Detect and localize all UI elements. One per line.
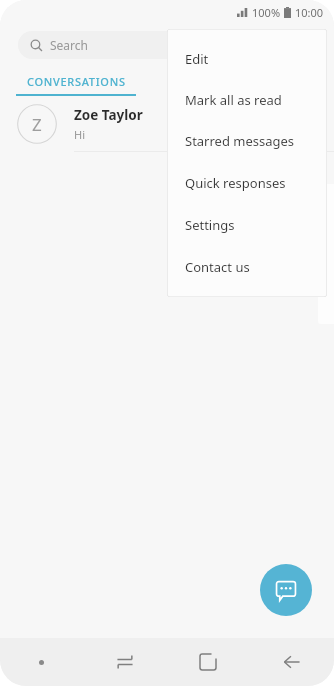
staticText: Contact us xyxy=(185,258,250,276)
button[interactable]: Edit xyxy=(167,38,327,79)
staticText: 100% xyxy=(252,5,281,20)
button[interactable]: Menu indicator xyxy=(0,638,83,686)
button[interactable]: Back xyxy=(250,638,334,686)
button[interactable]: Z xyxy=(0,96,334,151)
button[interactable]: Settings xyxy=(167,204,327,246)
staticText: Settings xyxy=(185,216,235,234)
button[interactable]: Recents xyxy=(83,638,166,686)
button[interactable]: Starred messages xyxy=(167,120,327,162)
button[interactable]: Home xyxy=(166,638,250,686)
button[interactable]: New conversation xyxy=(260,564,312,616)
staticText: Starred messages xyxy=(185,132,295,150)
button[interactable]: Quick responses xyxy=(167,162,327,204)
staticText: Mark all as read xyxy=(185,91,282,109)
staticText: Quick responses xyxy=(185,174,286,192)
staticText: Hi xyxy=(74,127,85,142)
staticText: CONVERSATIONS xyxy=(27,74,126,89)
button[interactable]: Search xyxy=(18,31,316,59)
staticText: 10:00 xyxy=(295,5,324,20)
staticText: Z xyxy=(32,113,42,136)
staticText: Search xyxy=(50,37,88,53)
button[interactable]: Mark all as read xyxy=(167,79,327,120)
button[interactable]: Contact us xyxy=(167,246,327,288)
staticText: Edit xyxy=(185,50,209,68)
button[interactable]: CONVERSATIONS xyxy=(0,68,152,94)
staticText: Zoe Taylor xyxy=(74,106,143,124)
